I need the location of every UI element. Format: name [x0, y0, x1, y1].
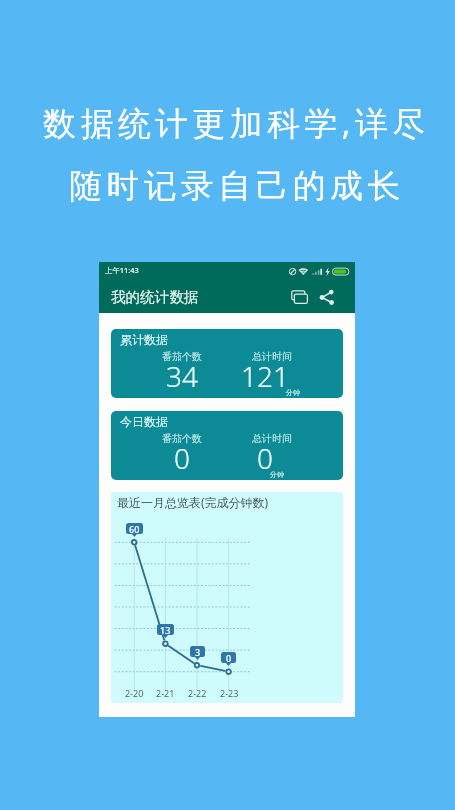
staticText: 番茄个数	[162, 350, 202, 363]
staticText: 上午11:43	[105, 265, 139, 275]
staticText: 60	[129, 523, 140, 534]
staticText: 总计时间	[252, 432, 292, 445]
staticText: 121	[241, 357, 289, 395]
staticText: 2-21	[156, 687, 175, 699]
staticText: 随时记录自己的成长	[69, 165, 405, 206]
staticText: 2-20	[125, 687, 144, 699]
staticText: 最近一月总览表(完成分钟数)	[117, 494, 269, 510]
staticText: 今日数据	[120, 414, 168, 429]
staticText: 2-23	[220, 687, 239, 699]
button[interactable]: Copy	[286, 284, 312, 310]
staticText: 总计时间	[252, 350, 292, 363]
button[interactable]: Share	[314, 284, 340, 310]
staticText: 分钟	[270, 470, 284, 479]
button[interactable]: 累计数据	[111, 329, 343, 398]
staticText: 累计数据	[120, 332, 168, 347]
staticText: 我的统计数据	[111, 288, 199, 306]
staticText: 分钟	[286, 388, 300, 397]
staticText: 3	[195, 646, 201, 657]
button[interactable]: 今日数据	[111, 411, 343, 480]
staticText: 数据统计更加科学,详尽	[43, 100, 430, 145]
staticText: 2-22	[188, 687, 207, 699]
staticText: 0	[174, 439, 190, 477]
staticText: 番茄个数	[162, 432, 202, 445]
staticText: 0	[226, 652, 232, 663]
staticText: 0	[257, 439, 273, 477]
staticText: 13	[160, 624, 171, 635]
staticText: 34	[166, 357, 198, 395]
